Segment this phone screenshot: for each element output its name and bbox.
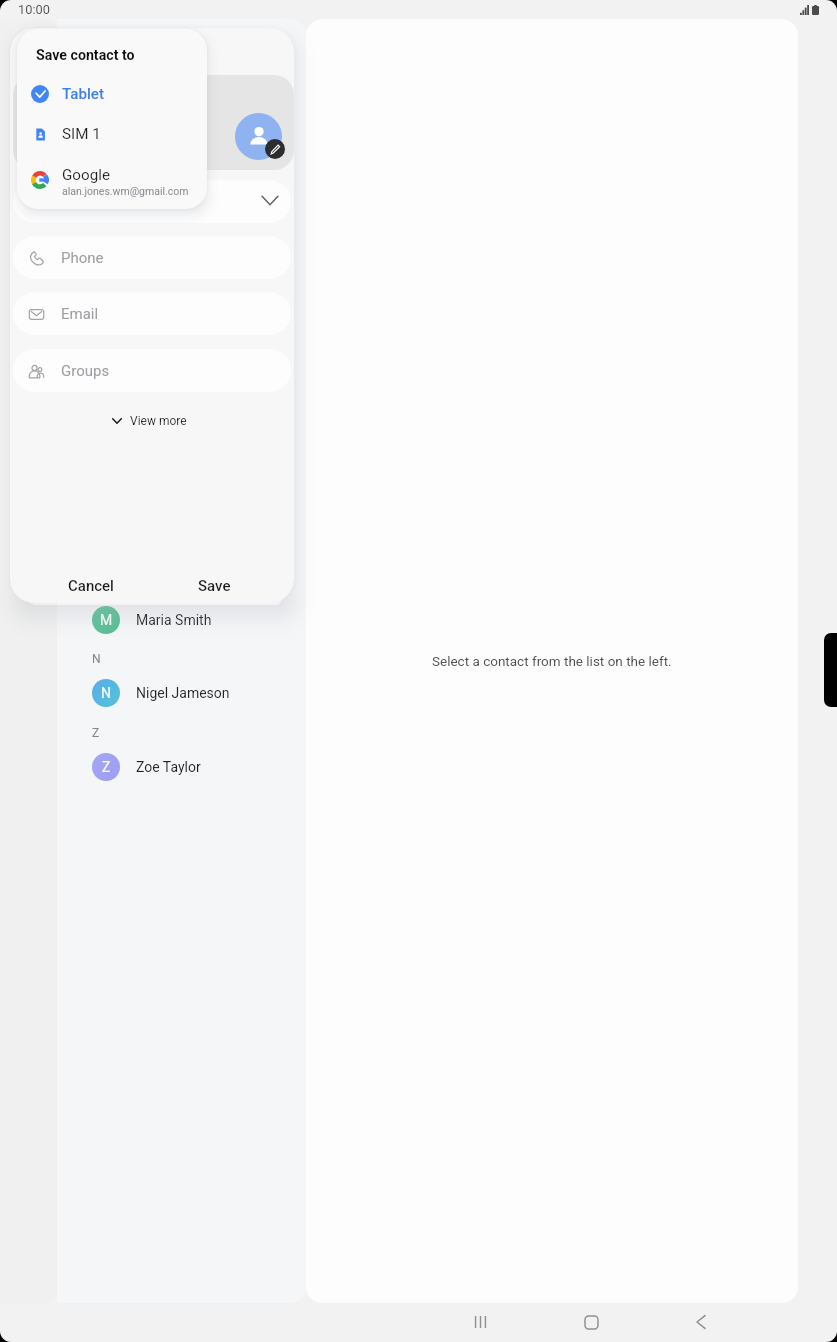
staticText: 10:00 xyxy=(18,2,50,17)
staticText: N xyxy=(92,652,101,666)
staticText: alan.jones.wm@gmail.com xyxy=(62,185,189,197)
staticText: Save xyxy=(198,577,231,595)
staticText: Z xyxy=(92,726,100,740)
staticText: Name xyxy=(61,193,101,211)
button[interactable]: N xyxy=(57,674,306,712)
button[interactable]: Tablet xyxy=(17,79,207,109)
staticText: View more xyxy=(130,414,187,428)
button[interactable]: Save xyxy=(174,566,254,603)
button[interactable]: View more xyxy=(10,407,291,435)
staticText: Select a contact from the list on the le… xyxy=(432,653,672,669)
staticText: Cancel xyxy=(68,577,114,595)
staticText: Zoe Taylor xyxy=(136,759,201,775)
button[interactable] xyxy=(17,159,207,205)
button[interactable]: Email xyxy=(13,292,291,335)
staticText: Phone xyxy=(61,249,104,267)
staticText: N xyxy=(101,685,111,701)
button[interactable]: Recents xyxy=(458,1302,502,1342)
button[interactable]: SIM 1 xyxy=(17,119,207,149)
staticText: M xyxy=(100,612,113,628)
button[interactable]: Z xyxy=(57,748,306,786)
staticText: Nigel Jameson xyxy=(136,685,230,701)
button[interactable]: Phone xyxy=(13,236,291,279)
button[interactable]: Cancel xyxy=(51,566,131,603)
button[interactable]: Back xyxy=(679,1302,723,1342)
staticText: Maria Smith xyxy=(136,612,212,628)
staticText: Google xyxy=(62,166,110,184)
button[interactable]: Name xyxy=(13,180,291,223)
button[interactable]: Groups xyxy=(13,349,291,392)
staticText: Email xyxy=(61,305,99,323)
button[interactable]: M xyxy=(57,601,306,639)
staticText: Save contact to xyxy=(36,47,135,64)
staticText: Tablet xyxy=(62,85,105,103)
staticText: Groups xyxy=(61,362,110,380)
staticText: Z xyxy=(102,759,111,775)
button[interactable]: Edit photo xyxy=(265,139,285,159)
staticText: SIM 1 xyxy=(62,125,101,143)
button[interactable]: Home xyxy=(569,1302,613,1342)
